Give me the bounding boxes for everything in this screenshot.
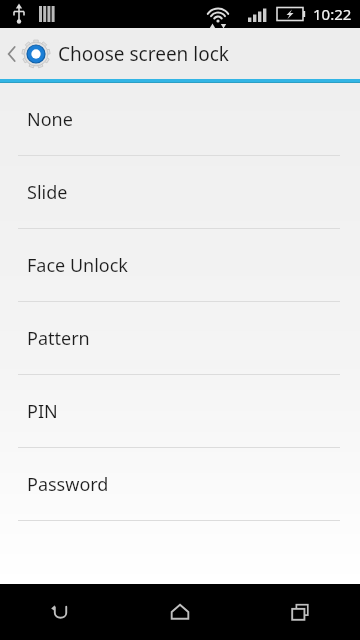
button[interactable]: PIN <box>0 375 360 448</box>
staticText: Pattern <box>27 326 90 351</box>
staticText: PIN <box>27 399 58 424</box>
button[interactable]: Navigate up <box>0 28 360 79</box>
button[interactable]: Slide <box>0 156 360 229</box>
button[interactable]: Pattern <box>0 302 360 375</box>
staticText: Password <box>27 472 109 497</box>
staticText: Slide <box>27 180 68 205</box>
staticText: None <box>27 107 73 132</box>
button[interactable]: Face Unlock <box>0 229 360 302</box>
staticText: Choose screen lock <box>58 41 229 67</box>
button[interactable]: Home <box>120 584 240 640</box>
button[interactable]: Recent apps <box>240 584 360 640</box>
button[interactable]: None <box>0 83 360 156</box>
button[interactable]: Back <box>0 584 120 640</box>
staticText: 10:22 <box>313 4 352 24</box>
button[interactable]: Password <box>0 448 360 521</box>
staticText: Face Unlock <box>27 253 128 278</box>
